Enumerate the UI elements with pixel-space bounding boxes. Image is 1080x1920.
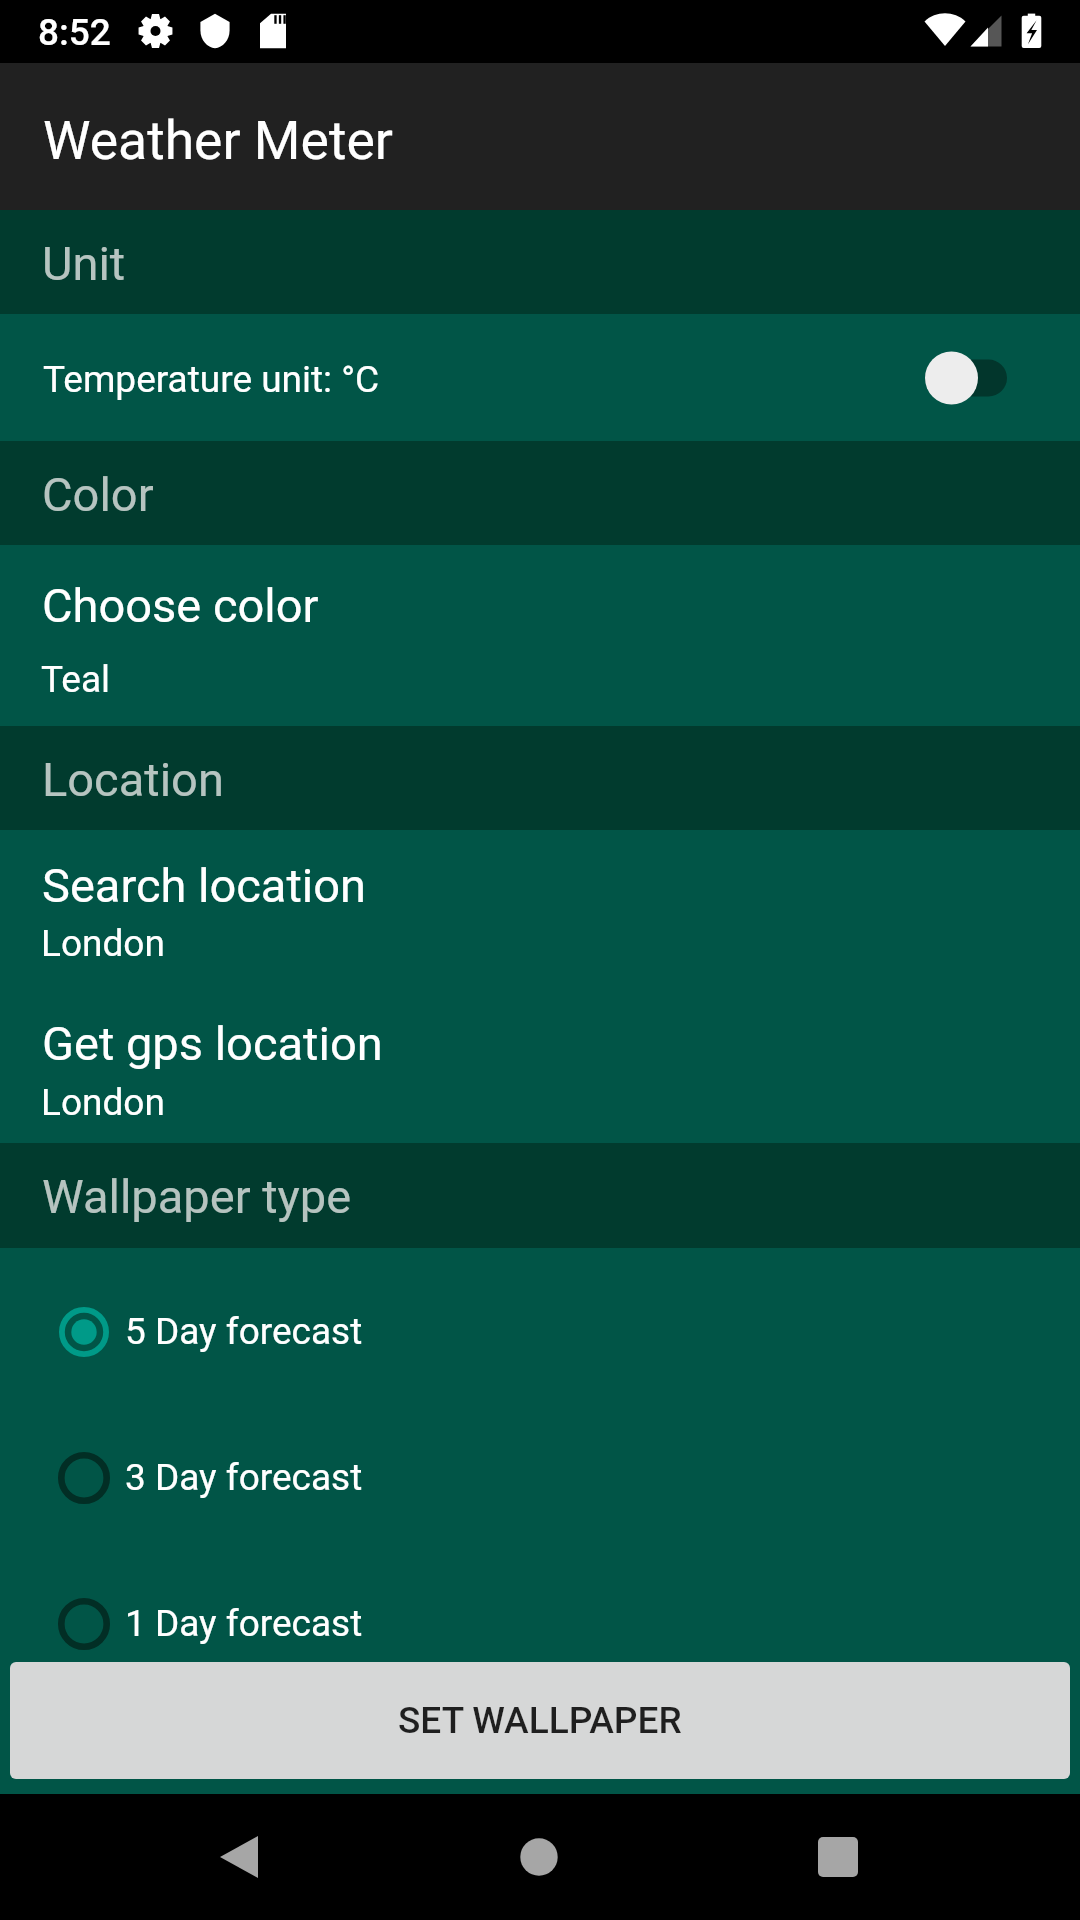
- button[interactable]: Choose color: [0, 545, 1080, 726]
- staticText: London: [41, 1081, 165, 1124]
- button[interactable]: Recent apps: [775, 1794, 901, 1920]
- staticText: Unit: [42, 236, 126, 291]
- button[interactable]: SET WALLPAPER: [10, 1662, 1070, 1779]
- staticText: Temperature unit: °C: [43, 358, 380, 401]
- button[interactable]: Temperature unit: °C: [0, 314, 1080, 441]
- staticText: London: [41, 922, 165, 965]
- button[interactable]: Toggle temperature unit: [907, 328, 1025, 428]
- button[interactable]: 1 Day forecast: [0, 1551, 1080, 1697]
- staticText: 8:52: [38, 11, 111, 54]
- staticText: 3 Day forecast: [125, 1456, 363, 1499]
- button[interactable]: Back: [177, 1794, 303, 1920]
- staticText: SET WALLPAPER: [398, 1699, 682, 1742]
- staticText: Choose color: [42, 578, 319, 633]
- button[interactable]: Get gps location: [0, 986, 1080, 1143]
- staticText: Search location: [42, 858, 366, 913]
- button[interactable]: Home: [476, 1794, 602, 1920]
- staticText: Color: [42, 467, 154, 522]
- staticText: Wallpaper type: [42, 1169, 352, 1224]
- staticText: Teal: [41, 658, 111, 701]
- button[interactable]: 5 Day forecast: [0, 1259, 1080, 1405]
- staticText: 1 Day forecast: [125, 1602, 363, 1645]
- staticText: Get gps location: [42, 1016, 383, 1071]
- staticText: Weather Meter: [43, 109, 393, 172]
- staticText: Location: [42, 752, 224, 807]
- button[interactable]: 3 Day forecast: [0, 1405, 1080, 1551]
- staticText: 5 Day forecast: [125, 1310, 363, 1353]
- button[interactable]: Search location: [0, 830, 1080, 986]
